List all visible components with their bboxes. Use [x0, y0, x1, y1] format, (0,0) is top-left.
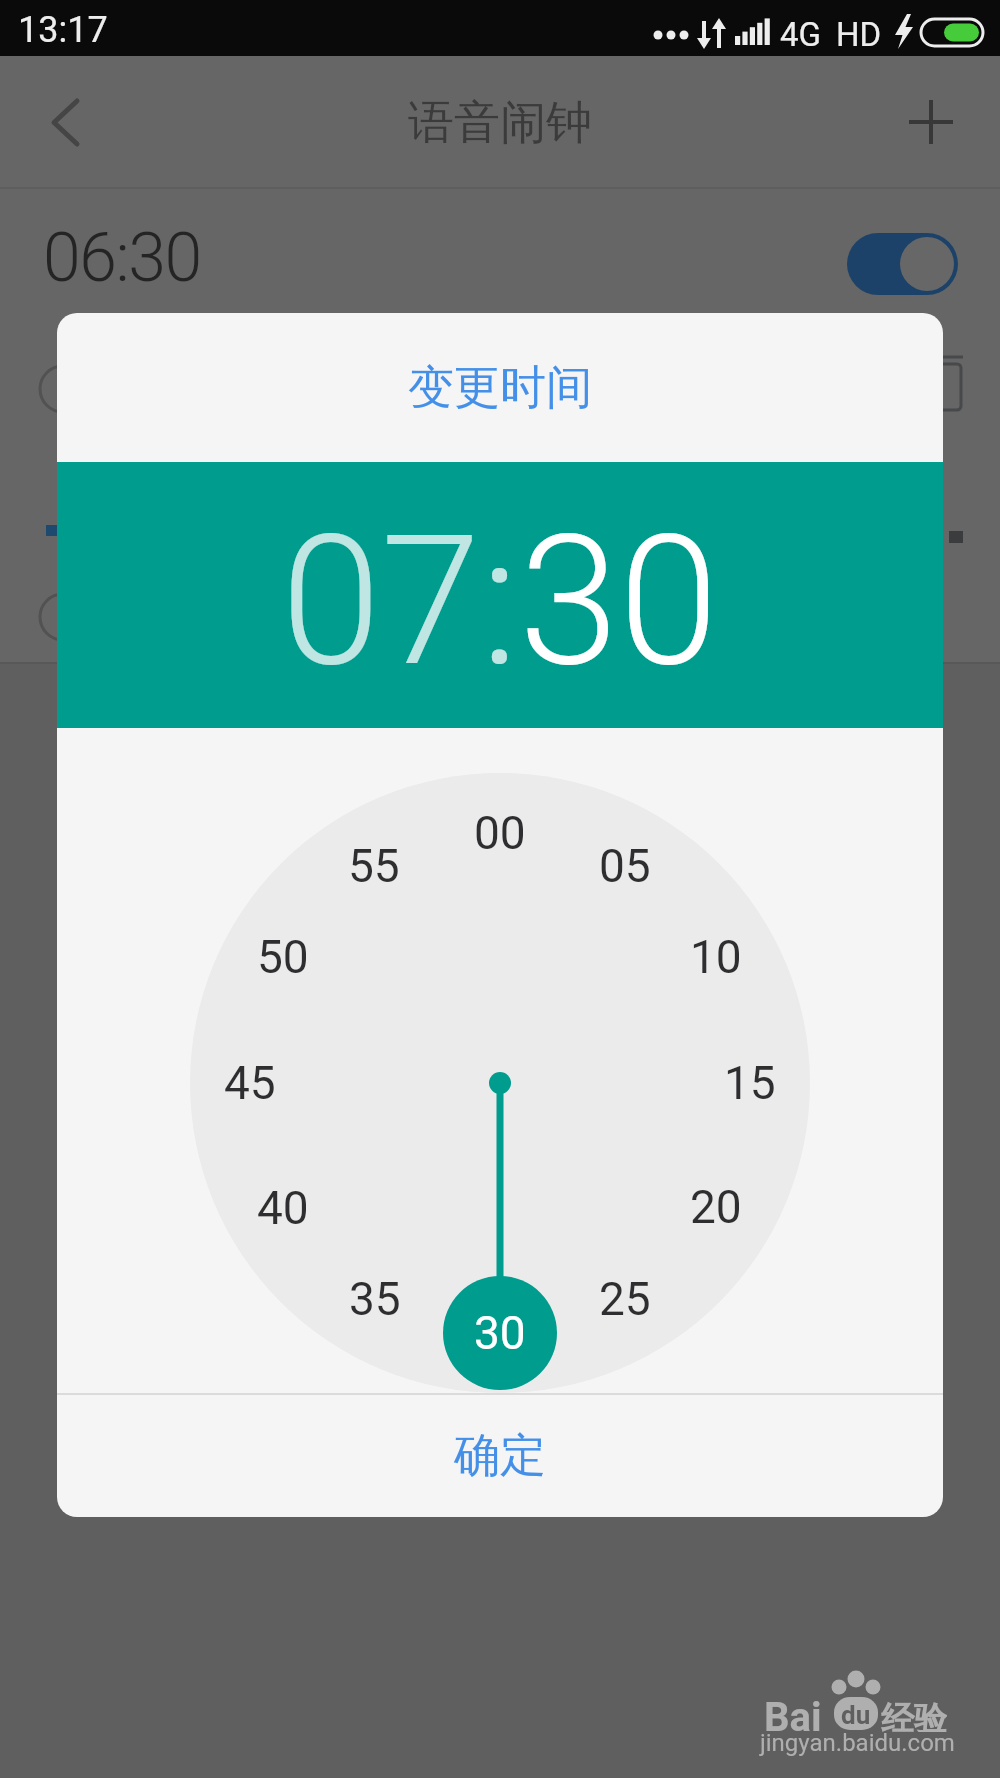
staticText: 06:30	[43, 218, 201, 298]
staticText: 经验	[881, 1698, 947, 1732]
button[interactable]: 20	[671, 1179, 761, 1235]
staticText: 40	[257, 1181, 309, 1235]
button[interactable]: 确定	[57, 1395, 943, 1517]
staticText: 变更时间	[408, 359, 592, 417]
staticText: 13:17	[18, 9, 108, 49]
staticText: 45	[224, 1056, 276, 1110]
staticText: du	[841, 1700, 871, 1728]
button[interactable]: 45	[205, 1055, 295, 1111]
button[interactable]: 50	[238, 929, 328, 985]
button[interactable]: 30	[455, 1305, 545, 1361]
button[interactable]: 00	[455, 805, 545, 861]
button[interactable]: 10	[671, 929, 761, 985]
staticText: 55	[348, 839, 400, 893]
staticText: 07:	[281, 496, 519, 707]
staticText: 50	[257, 930, 309, 984]
button[interactable]: 15	[705, 1055, 795, 1111]
staticText: jingyan.baidu.com	[760, 1729, 955, 1757]
button[interactable]	[886, 86, 976, 158]
button[interactable]: 55	[329, 838, 419, 894]
button[interactable]: 25	[580, 1271, 670, 1327]
staticText: 35	[349, 1272, 401, 1326]
staticText: Bai	[764, 1694, 822, 1734]
staticText: HD	[836, 15, 882, 54]
button[interactable]	[20, 86, 110, 158]
button[interactable]: 05	[580, 838, 670, 894]
staticText: 确定	[454, 1427, 546, 1485]
staticText: 15	[724, 1056, 776, 1110]
staticText: 05	[599, 839, 651, 893]
staticText: 25	[599, 1272, 651, 1326]
button[interactable]: 40	[238, 1180, 328, 1236]
staticText: 语音闹钟	[408, 94, 592, 152]
button[interactable]: 35	[330, 1271, 420, 1327]
staticText: 30	[519, 496, 719, 707]
staticText: 20	[690, 1180, 742, 1234]
staticText: 10	[690, 930, 742, 984]
button[interactable]	[847, 233, 958, 295]
staticText: 30	[474, 1306, 526, 1360]
staticText: 00	[474, 806, 526, 860]
staticText: 4G	[780, 15, 822, 54]
